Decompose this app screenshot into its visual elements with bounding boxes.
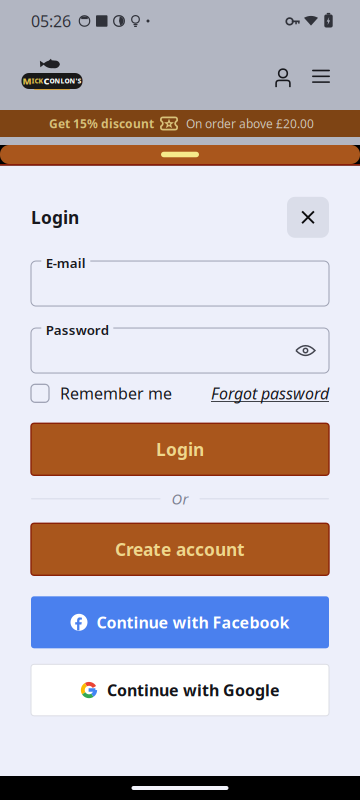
button[interactable]: Remember me — [31, 382, 172, 404]
button[interactable]: Menu — [303, 56, 339, 96]
staticText: ICK — [31, 77, 43, 85]
button[interactable]: Continue with Facebook — [31, 596, 329, 648]
staticText: Continue with Google — [107, 679, 280, 701]
staticText: Get 15% discount — [49, 115, 154, 131]
button[interactable]: Close — [287, 197, 329, 238]
button[interactable]: Login — [31, 423, 329, 475]
staticText: Create account — [115, 538, 245, 561]
staticText: E-mail — [46, 254, 86, 272]
staticText: Password — [46, 321, 109, 339]
staticText: Remember me — [60, 383, 172, 404]
staticText: Login — [156, 438, 204, 461]
staticText: Or — [171, 489, 188, 509]
button[interactable]: Account — [265, 53, 301, 93]
button[interactable]: Continue with Google — [31, 664, 329, 716]
staticText: 05:26 — [31, 10, 71, 32]
staticText: C — [43, 75, 49, 87]
staticText: Forgot password — [211, 383, 329, 404]
button[interactable]: Forgot password — [211, 382, 329, 404]
staticText: Continue with Facebook — [96, 612, 289, 633]
staticText: On order above £20.00 — [186, 115, 314, 131]
staticText: M — [22, 75, 31, 87]
button[interactable]: Create account — [31, 523, 329, 575]
staticText: ONLON'S — [49, 77, 81, 85]
staticText: Login — [31, 206, 79, 229]
